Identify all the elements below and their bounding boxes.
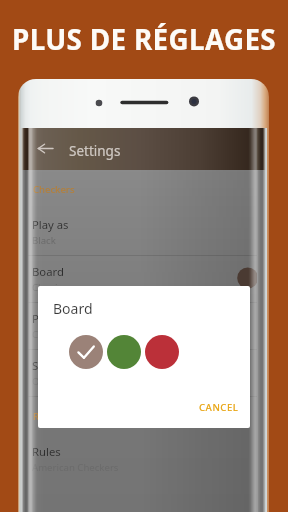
button[interactable]: Board — [21, 256, 267, 302]
button[interactable]: CANCEL — [196, 398, 242, 417]
staticText: Sound — [32, 358, 66, 373]
staticText: Classic — [32, 281, 63, 294]
button[interactable]: Pieces — [21, 303, 267, 349]
staticText: Board — [53, 299, 93, 318]
staticText: American Checkers — [32, 461, 119, 474]
staticText: Play as — [32, 217, 69, 232]
button[interactable]: Red board — [145, 335, 179, 369]
staticText: Rules — [32, 444, 61, 459]
button[interactable]: Back — [25, 128, 65, 168]
staticText: On — [32, 375, 46, 388]
staticText: Settings — [69, 142, 121, 160]
staticText: Pieces — [32, 311, 66, 326]
staticText: Black — [32, 234, 56, 247]
button[interactable]: Brown board — [69, 335, 103, 369]
button[interactable]: Green board — [107, 335, 141, 369]
button[interactable]: Sound — [21, 350, 267, 396]
staticText: PLUS DE RÉGLAGES — [0, 20, 288, 58]
button[interactable]: Rules — [21, 436, 267, 482]
staticText: Classic — [32, 328, 63, 341]
staticText: Board — [32, 264, 64, 279]
button[interactable]: Play as — [21, 209, 267, 255]
staticText: Checkers — [33, 183, 75, 196]
staticText: Rules — [33, 410, 58, 423]
staticText: CANCEL — [199, 401, 239, 414]
